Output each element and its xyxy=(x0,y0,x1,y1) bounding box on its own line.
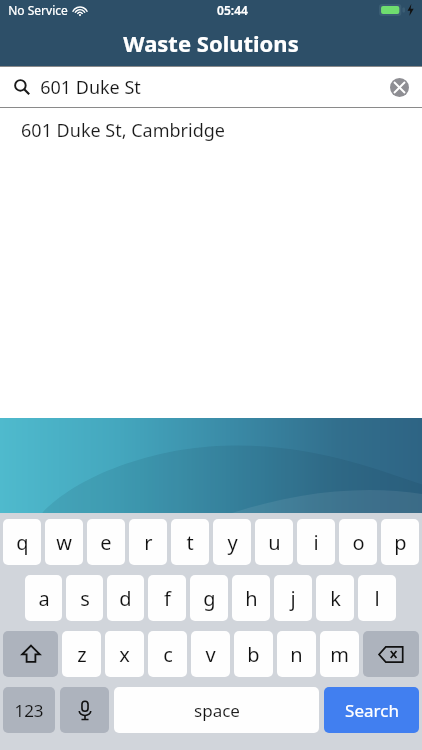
staticText: t xyxy=(186,529,194,556)
staticText: r xyxy=(144,529,153,556)
button[interactable]: Clear search xyxy=(388,76,410,98)
staticText: g xyxy=(203,585,216,612)
staticText: Waste Solutions xyxy=(123,28,299,58)
button[interactable]: r xyxy=(129,519,167,565)
button[interactable]: e xyxy=(87,519,125,565)
button[interactable]: o xyxy=(339,519,377,565)
button[interactable]: n xyxy=(277,631,316,677)
staticText: n xyxy=(290,641,303,668)
staticText: i xyxy=(313,529,319,556)
staticText: 123 xyxy=(14,699,44,722)
button[interactable]: l xyxy=(358,575,396,621)
button[interactable]: f xyxy=(148,575,186,621)
staticText: p xyxy=(394,529,407,556)
button[interactable]: u xyxy=(255,519,293,565)
button[interactable]: Shift xyxy=(3,631,58,677)
staticText: k xyxy=(330,585,341,612)
button[interactable]: m xyxy=(320,631,359,677)
staticText: No Service xyxy=(8,2,68,18)
button[interactable]: q xyxy=(3,519,41,565)
button[interactable]: Voice input xyxy=(60,687,109,733)
staticText: d xyxy=(119,585,132,612)
button[interactable]: k xyxy=(316,575,354,621)
staticText: v xyxy=(205,641,216,668)
button[interactable]: c xyxy=(148,631,187,677)
staticText: 05:44 xyxy=(217,2,248,18)
staticText: b xyxy=(247,641,260,668)
staticText: e xyxy=(100,529,112,556)
staticText: a xyxy=(38,585,50,612)
button[interactable]: v xyxy=(191,631,230,677)
button[interactable]: y xyxy=(213,519,251,565)
button[interactable]: i xyxy=(297,519,335,565)
staticText: 601 Duke St xyxy=(40,75,141,100)
staticText: x xyxy=(119,641,130,668)
button[interactable]: 123 xyxy=(3,687,55,733)
staticText: s xyxy=(80,585,90,612)
staticText: space xyxy=(194,699,240,722)
staticText: 601 Duke St, Cambridge xyxy=(21,118,225,143)
staticText: j xyxy=(290,585,296,612)
button[interactable]: a xyxy=(25,575,62,621)
button[interactable]: x xyxy=(105,631,144,677)
button[interactable]: space xyxy=(114,687,319,733)
staticText: o xyxy=(352,529,365,556)
button[interactable]: 601 Duke St xyxy=(0,67,422,107)
staticText: h xyxy=(245,585,258,612)
staticText: y xyxy=(227,529,238,556)
staticText: c xyxy=(163,641,173,668)
button[interactable]: h xyxy=(232,575,270,621)
button[interactable]: t xyxy=(171,519,209,565)
button[interactable]: s xyxy=(66,575,103,621)
staticText: u xyxy=(268,529,281,556)
staticText: Search xyxy=(345,699,399,722)
button[interactable]: w xyxy=(45,519,83,565)
staticText: z xyxy=(77,641,87,668)
button[interactable]: Backspace xyxy=(363,631,419,677)
staticText: w xyxy=(56,529,72,556)
staticText: m xyxy=(330,641,349,668)
staticText: q xyxy=(16,529,29,556)
button[interactable]: p xyxy=(381,519,419,565)
button[interactable]: 601 Duke St, Cambridge xyxy=(0,108,422,152)
staticText: l xyxy=(374,585,380,612)
button[interactable]: z xyxy=(62,631,101,677)
button[interactable]: Search xyxy=(324,687,419,733)
button[interactable]: d xyxy=(107,575,144,621)
button[interactable]: j xyxy=(274,575,312,621)
button[interactable]: g xyxy=(190,575,228,621)
staticText: f xyxy=(164,585,171,612)
button[interactable]: b xyxy=(234,631,273,677)
